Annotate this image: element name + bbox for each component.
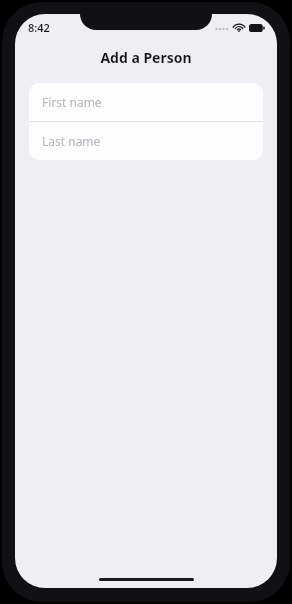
staticText: Last name (42, 133, 101, 149)
staticText: Add a Person (100, 48, 192, 67)
button[interactable]: Last name (29, 122, 263, 160)
staticText: 8:42 (28, 20, 50, 35)
button[interactable]: First name (29, 83, 263, 121)
staticText: First name (42, 94, 102, 110)
